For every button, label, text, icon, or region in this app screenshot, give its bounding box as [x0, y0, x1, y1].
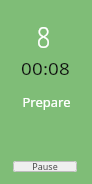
- staticText: Prepare: [22, 93, 71, 111]
- staticText: 00:08: [21, 57, 70, 80]
- staticText: Pause: [32, 161, 58, 171]
- staticText: 8: [36, 17, 50, 56]
- button[interactable]: Pause: [13, 161, 77, 172]
